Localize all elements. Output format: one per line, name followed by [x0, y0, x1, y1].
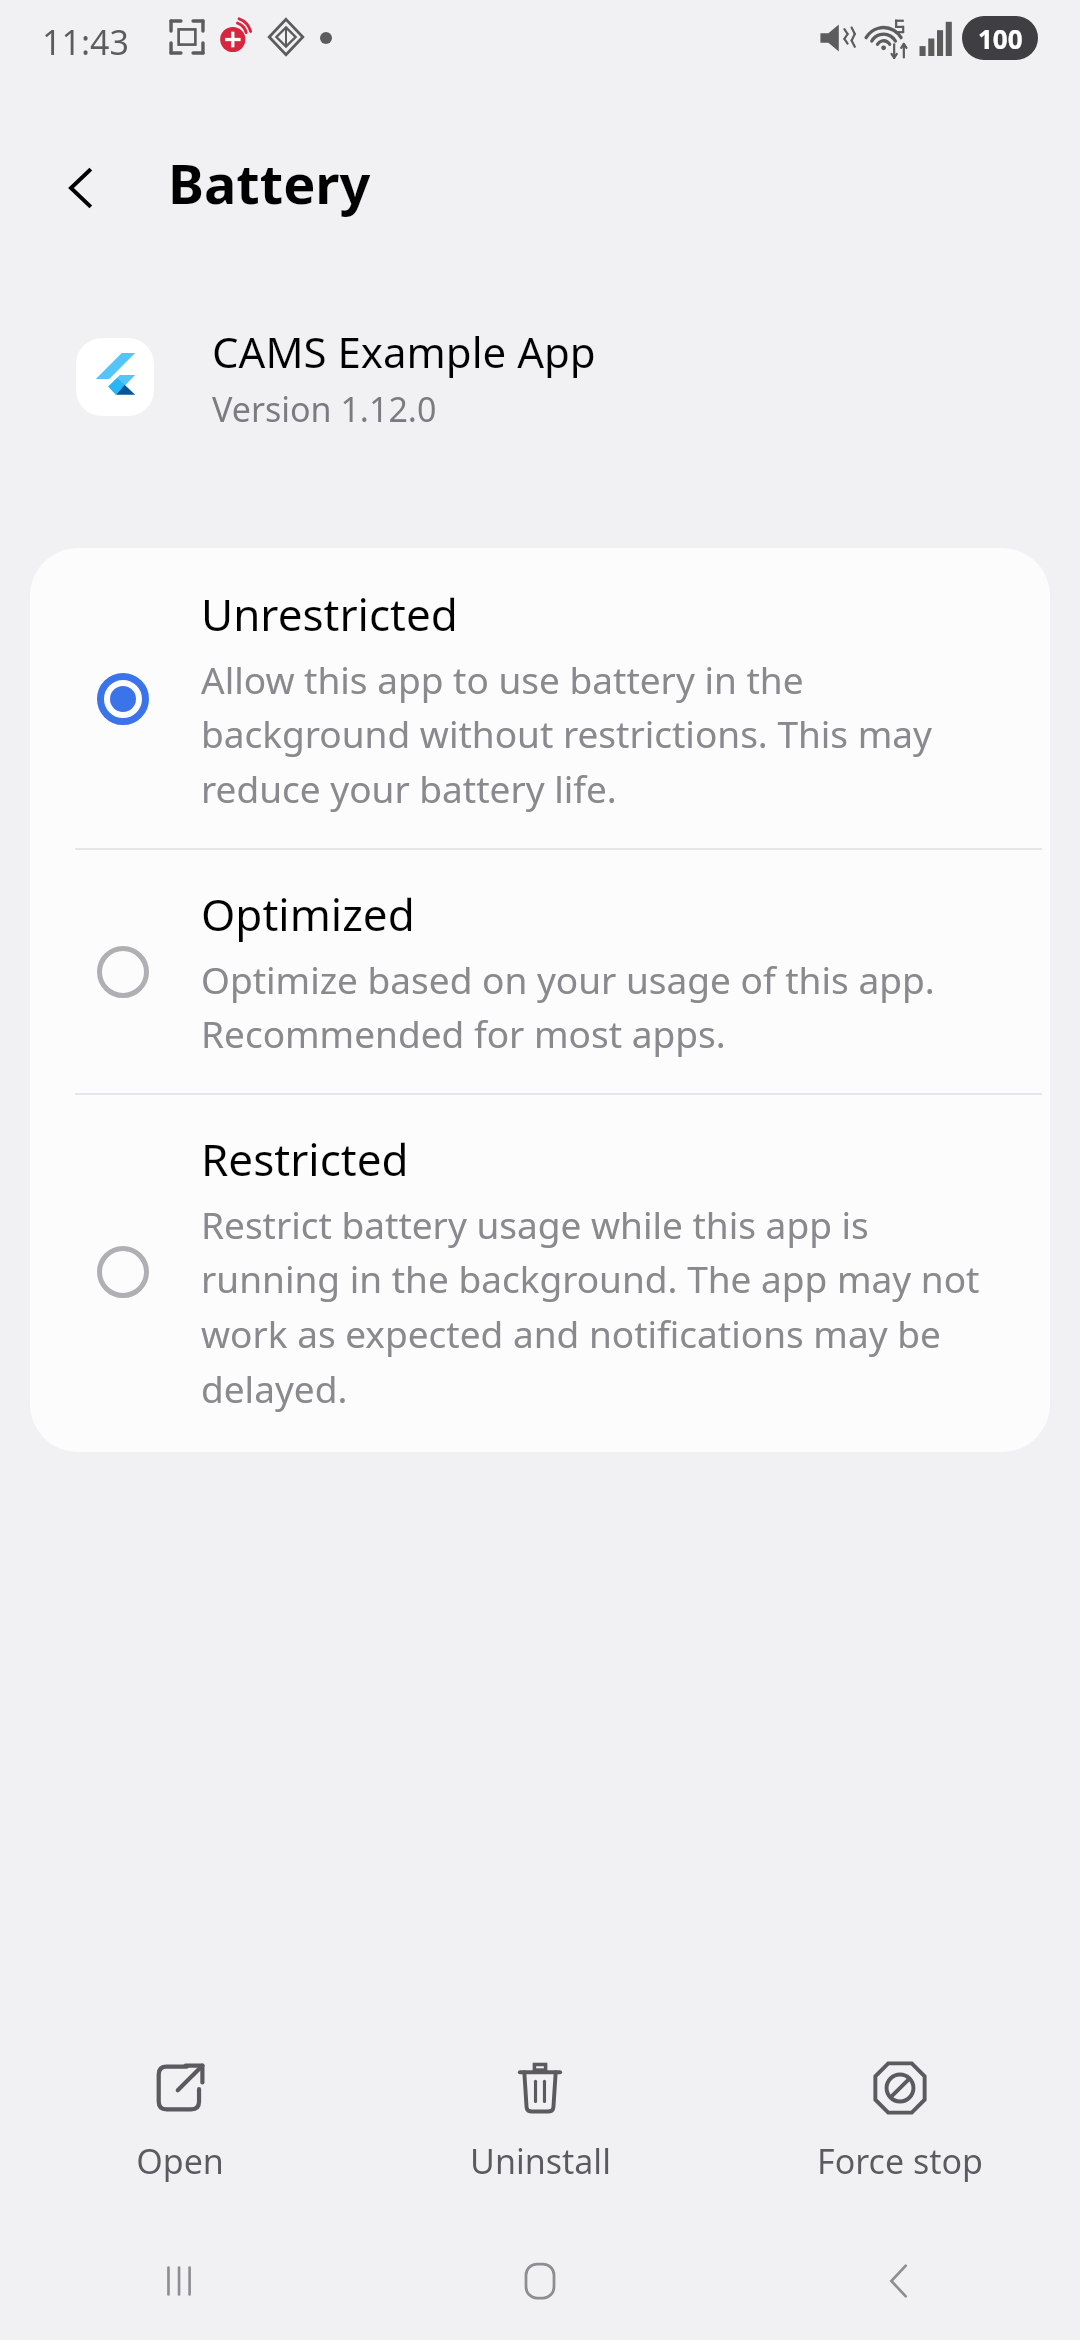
staticText: 100 [978, 21, 1023, 56]
staticText: Unrestricted [201, 584, 458, 644]
staticText: Optimized [201, 884, 415, 944]
staticText: Open [136, 2138, 224, 2184]
staticText: 11:43 [42, 19, 129, 65]
button[interactable]: Recents [0, 2222, 360, 2340]
staticText: Version 1.12.0 [212, 386, 437, 432]
staticText: CAMS Example App [212, 323, 596, 380]
staticText: Optimize based on your usage of this app… [201, 954, 1002, 1059]
staticText: Battery [168, 146, 371, 220]
staticText: Allow this app to use battery in the bac… [201, 654, 1002, 814]
staticText: Force stop [817, 2138, 983, 2184]
staticText: Restrict battery usage while this app is… [201, 1199, 1002, 1414]
button[interactable]: Unrestricted [30, 548, 1050, 848]
button[interactable]: Restricted [30, 1095, 1050, 1452]
button[interactable]: Back [40, 146, 124, 230]
button[interactable]: Back [720, 2222, 1080, 2340]
button[interactable]: Force stop [720, 2040, 1080, 2200]
button[interactable]: Uninstall [360, 2040, 720, 2200]
button[interactable]: Home [360, 2222, 720, 2340]
staticText: Uninstall [470, 2138, 611, 2184]
button[interactable]: Optimized [30, 850, 1050, 1093]
staticText: Restricted [201, 1129, 409, 1189]
button[interactable]: Open [0, 2040, 360, 2200]
